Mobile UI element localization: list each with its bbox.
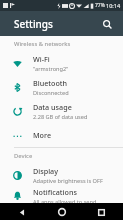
staticText: 10:14	[106, 2, 121, 9]
staticText: More	[33, 130, 52, 140]
button[interactable]: Data usage	[0, 99, 123, 123]
staticText: Settings	[14, 17, 53, 31]
staticText: Disconnected	[33, 89, 69, 97]
staticText: Wireless & networks	[14, 40, 71, 48]
button[interactable]: Notifications	[0, 187, 123, 203]
staticText: Data usage	[33, 102, 72, 112]
staticText: Device	[14, 152, 33, 160]
staticText: "armstrong2"	[33, 65, 69, 73]
button[interactable]: Recent apps	[93, 204, 109, 220]
button[interactable]: Back	[14, 204, 30, 220]
staticText: All apps allowed to send	[33, 198, 97, 203]
button[interactable]: Wi-Fi	[0, 51, 123, 75]
button[interactable]: Home	[54, 204, 70, 220]
staticText: Adaptive brightness is OFF	[33, 177, 103, 185]
button[interactable]: Display	[0, 163, 123, 187]
staticText: Bluetooth	[33, 78, 68, 88]
staticText: 2.28 GB of data used	[33, 113, 88, 121]
staticText: Notifications	[33, 187, 77, 197]
staticText: Display	[33, 166, 58, 176]
staticText: Wi-Fi	[33, 54, 50, 64]
staticText: 77%	[95, 2, 105, 9]
button[interactable]: Bluetooth	[0, 75, 123, 99]
button[interactable]: Search	[99, 16, 115, 32]
button[interactable]: More	[0, 123, 123, 147]
